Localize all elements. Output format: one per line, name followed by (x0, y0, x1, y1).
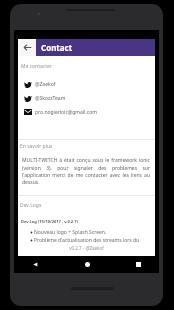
button[interactable]: Recent apps (131, 258, 145, 270)
staticText: Me contacter (21, 63, 52, 70)
staticText: Nouveau logo + Splash Screen. (34, 229, 107, 236)
staticText: @SkozzTeam (35, 95, 66, 102)
button[interactable]: Home (80, 258, 94, 270)
staticText: En savoir plus (20, 143, 53, 150)
button[interactable]: Back (28, 258, 42, 270)
staticText: MULTI-TWITCH à était conçu sous le frame… (22, 157, 150, 185)
staticText: @Zaekof (35, 81, 56, 88)
button[interactable]: @Zaekof (18, 78, 155, 90)
staticText: v0.2.7 - @Zaekof (18, 245, 155, 251)
staticText: Dev Logs (20, 202, 42, 209)
button[interactable]: @SkozzTeam (18, 92, 155, 104)
staticText: Contact (41, 42, 73, 53)
button[interactable]: Back (18, 39, 36, 56)
staticText: Problème d'actualisation des streams lor… (34, 237, 140, 244)
staticText: Dev Log (15/10/2017 - v.0.2.7) (21, 219, 78, 224)
staticText: pro.nogierloic@gmail.com (35, 109, 97, 116)
button[interactable]: pro.nogierloic@gmail.com (18, 106, 155, 118)
